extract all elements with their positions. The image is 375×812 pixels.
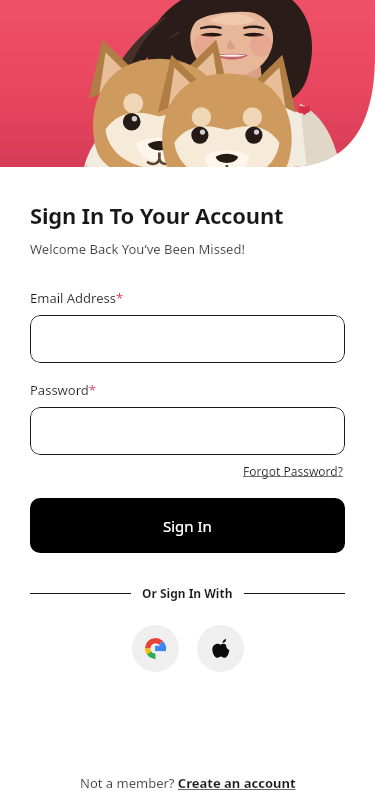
button[interactable] [30, 407, 345, 455]
button[interactable] [30, 315, 345, 363]
staticText: Sign In [163, 516, 212, 536]
staticText: Not a member? Create an account [80, 774, 296, 792]
button[interactable]: Sign in with Apple [197, 625, 244, 672]
staticText: Welcome Back You’ve Been Missed! [30, 240, 245, 258]
staticText: Sign In To Your Account [30, 200, 284, 230]
staticText: Forgot Password? [243, 463, 343, 479]
button[interactable]: Sign in with Google [132, 625, 179, 672]
button[interactable]: Sign In [30, 498, 345, 553]
staticText: Email Address* [30, 289, 124, 307]
button[interactable]: Forgot Password? [241, 461, 345, 481]
staticText: Password* [30, 381, 96, 399]
staticText: Or Sign In With [142, 585, 233, 601]
button[interactable]: Not a member? Create an account [30, 774, 345, 812]
